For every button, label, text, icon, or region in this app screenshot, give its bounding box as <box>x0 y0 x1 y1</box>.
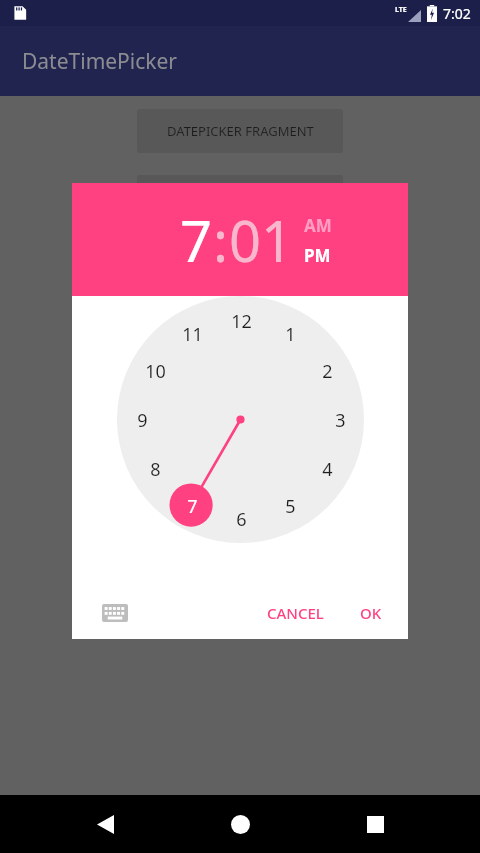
button[interactable]: AM <box>304 214 332 237</box>
staticText: OK <box>360 603 382 623</box>
staticText: DateTimePicker <box>22 47 178 76</box>
staticText: CANCEL <box>267 603 324 623</box>
button[interactable]: Home <box>210 795 270 853</box>
staticText: 10 <box>145 359 166 384</box>
staticText: 8 <box>150 457 161 482</box>
staticText: PM <box>304 244 331 267</box>
staticText: DATEPICKER FRAGMENT <box>167 122 314 140</box>
button[interactable]: OK <box>350 596 392 630</box>
button[interactable] <box>137 175 343 219</box>
staticText: 7:02 <box>443 4 471 23</box>
staticText: : <box>213 202 229 278</box>
button[interactable]: PM <box>304 244 331 267</box>
button[interactable]: Switch to text input <box>98 598 132 628</box>
staticText: 3 <box>335 408 346 433</box>
button[interactable]: CANCEL <box>257 596 334 630</box>
staticText: 7 <box>187 494 198 519</box>
staticText: 11 <box>182 322 203 347</box>
staticText: 2 <box>322 359 333 384</box>
staticText: LTE <box>395 5 407 15</box>
staticText: AM <box>304 214 332 237</box>
button[interactable]: Recent apps <box>345 795 405 853</box>
staticText: 9 <box>137 408 148 433</box>
staticText: 12 <box>231 309 252 334</box>
button[interactable]: 01 <box>229 202 294 278</box>
button[interactable]: DATEPICKER FRAGMENT <box>137 109 343 153</box>
button[interactable]: Back <box>75 795 135 853</box>
staticText: 1 <box>285 322 296 347</box>
button[interactable]: 7 <box>180 202 213 278</box>
button[interactable]: 1 <box>117 296 364 543</box>
staticText: 6 <box>236 507 247 532</box>
staticText: 5 <box>285 494 296 519</box>
staticText: 4 <box>322 457 333 482</box>
